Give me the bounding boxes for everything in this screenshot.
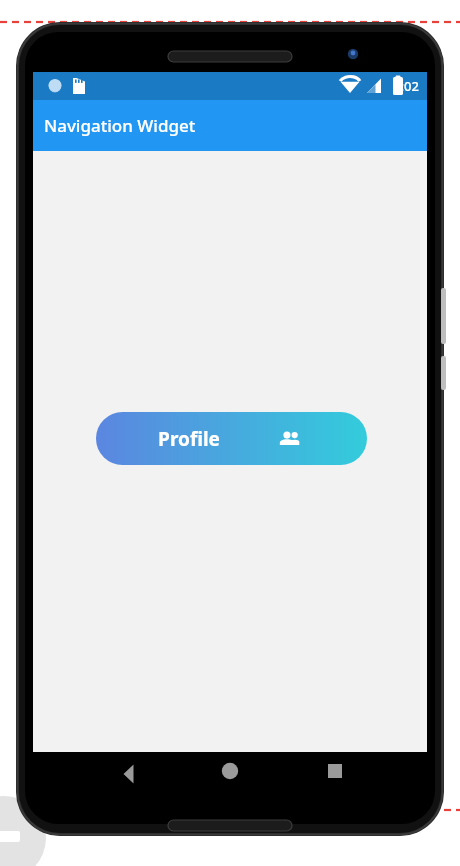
button[interactable]: Back (107, 752, 151, 790)
other: Profile people (277, 426, 303, 452)
button[interactable]: Profile (96, 412, 367, 465)
staticText: Profile (158, 426, 220, 452)
button[interactable]: Recent apps (313, 752, 357, 790)
staticText: 6:02 (393, 77, 419, 95)
staticText: Navigation Widget (44, 114, 196, 137)
button[interactable]: Home (208, 752, 252, 790)
